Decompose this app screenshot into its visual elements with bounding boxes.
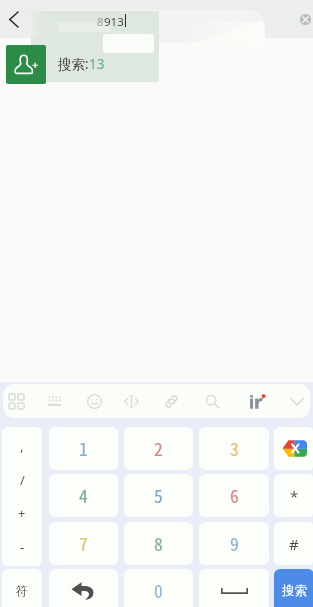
button[interactable]: 6 — [199, 474, 269, 517]
button[interactable]: 9 — [199, 522, 269, 565]
button[interactable]: Symbol keyboard — [2, 569, 42, 607]
staticText: * — [290, 486, 299, 506]
button[interactable]: 5 — [124, 474, 193, 517]
button[interactable]: Pound — [274, 522, 313, 565]
button[interactable]: 2 — [124, 427, 193, 470]
button[interactable]: Move cursor — [116, 386, 146, 416]
button[interactable]: Store — [242, 386, 272, 416]
staticText: - — [20, 538, 25, 556]
button[interactable]: Keyboard layout — [40, 386, 70, 416]
staticText: , — [20, 437, 24, 455]
button[interactable]: Clipboard — [156, 386, 186, 416]
button[interactable]: Back — [0, 6, 26, 32]
button[interactable]: Space — [199, 569, 269, 607]
staticText: + — [18, 504, 26, 522]
staticText: 1 — [79, 436, 88, 461]
staticText: 搜索 — [282, 583, 307, 599]
staticText: 符 — [16, 583, 28, 598]
button[interactable]: Delete — [274, 427, 313, 470]
button[interactable]: Clear text — [294, 8, 313, 30]
button[interactable]: Hide keyboard — [282, 386, 310, 416]
staticText: 8 — [97, 14, 104, 27]
button[interactable]: 7 — [49, 522, 118, 565]
staticText: / — [20, 471, 25, 489]
staticText: 搜索: — [58, 55, 89, 73]
button[interactable]: 0 — [124, 569, 193, 607]
button[interactable]: 4 — [49, 474, 118, 517]
staticText: 3 — [230, 436, 239, 461]
button[interactable]: Symbols — [2, 427, 42, 566]
staticText: 913 — [104, 14, 124, 27]
button[interactable]: 1 — [49, 427, 118, 470]
staticText: 6 — [230, 483, 239, 508]
staticText: 8 — [154, 531, 163, 556]
staticText: 2 — [154, 436, 163, 461]
staticText: 7 — [79, 531, 88, 556]
staticText: 5 — [154, 483, 163, 508]
button[interactable]: Search — [197, 386, 227, 416]
staticText: 9 — [230, 531, 239, 556]
button[interactable]: 搜索: — [0, 38, 313, 92]
button[interactable]: 8 — [124, 522, 193, 565]
button[interactable]: Search — [274, 569, 313, 607]
staticText: 0 — [154, 578, 163, 603]
staticText: # — [289, 534, 299, 554]
button[interactable]: 3 — [199, 427, 269, 470]
button[interactable]: Backspace — [49, 569, 118, 607]
staticText: 13 — [89, 55, 105, 73]
button[interactable]: Star — [274, 474, 313, 517]
staticText: 4 — [79, 483, 88, 508]
button[interactable]: Apps — [3, 386, 31, 416]
button[interactable]: Emoji — [79, 386, 109, 416]
